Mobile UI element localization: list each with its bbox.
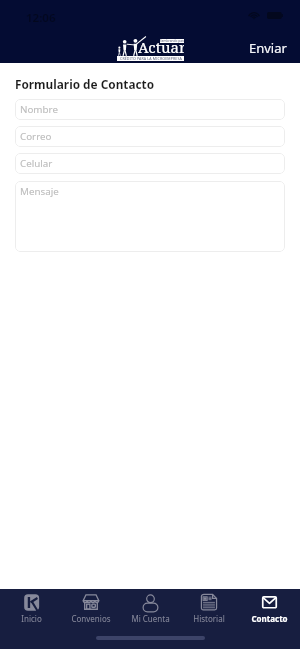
button[interactable]: Correo <box>15 126 285 147</box>
button[interactable]: Inicio <box>3 589 59 624</box>
staticText: CRÉDITO PARA LA MICROEMPRESA <box>120 56 182 61</box>
staticText: Sembrando para Cosechar <box>160 39 184 43</box>
staticText: Correo <box>20 130 52 142</box>
staticText: Historial <box>193 613 225 624</box>
staticText: Inicio <box>21 613 42 624</box>
button[interactable]: Nombre <box>15 99 285 120</box>
staticText: 12:06 <box>26 10 56 26</box>
staticText: Celular <box>20 157 53 169</box>
staticText: Mi Cuenta <box>131 613 170 624</box>
staticText: Nombre <box>20 103 58 115</box>
button[interactable]: Celular <box>15 153 285 174</box>
button[interactable]: Mensaje <box>15 181 285 252</box>
staticText: Contacto <box>251 613 288 624</box>
button[interactable]: Historial <box>181 589 237 624</box>
staticText: Convenios <box>71 613 111 624</box>
button[interactable]: Mi Cuenta <box>122 589 178 624</box>
staticText: Enviar <box>249 39 287 57</box>
staticText: Formulario de Contacto <box>15 76 155 92</box>
staticText: Mensaje <box>20 185 59 198</box>
button[interactable]: Contacto <box>241 589 297 624</box>
staticText: Actuar <box>138 37 184 56</box>
button[interactable]: Convenios <box>63 589 119 624</box>
button[interactable]: Enviar <box>235 29 300 63</box>
